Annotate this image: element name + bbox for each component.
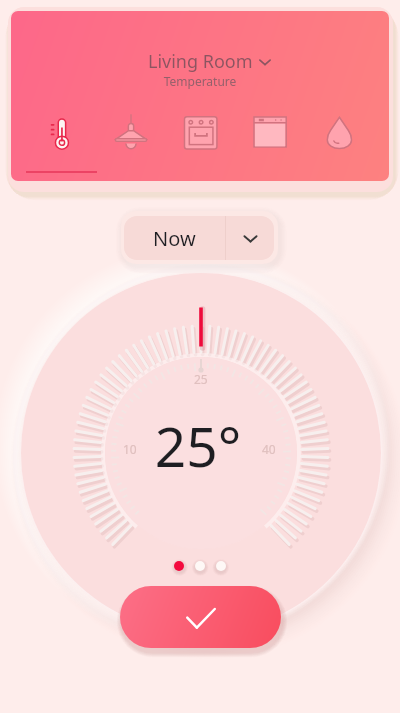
staticText: 25°	[0, 408, 398, 483]
staticText: Temperature	[11, 73, 389, 89]
button[interactable]: Confirm	[120, 586, 281, 648]
staticText: Living Room	[148, 49, 253, 74]
staticText: 25	[194, 371, 208, 387]
button[interactable]: Temperature	[34, 106, 88, 160]
button[interactable]: Light	[104, 106, 158, 160]
button[interactable]: Humidity	[313, 106, 367, 160]
button[interactable]: Page 1	[174, 561, 184, 571]
button[interactable]: Page 3	[216, 561, 226, 571]
staticText: 40	[262, 441, 276, 457]
button[interactable]: Oven	[174, 106, 228, 160]
button[interactable]: Dishwasher	[244, 106, 298, 160]
button[interactable]: Page 2	[195, 561, 205, 571]
staticText: 10	[123, 441, 137, 457]
button[interactable]: Now	[124, 216, 274, 260]
staticText: Now	[153, 225, 196, 252]
